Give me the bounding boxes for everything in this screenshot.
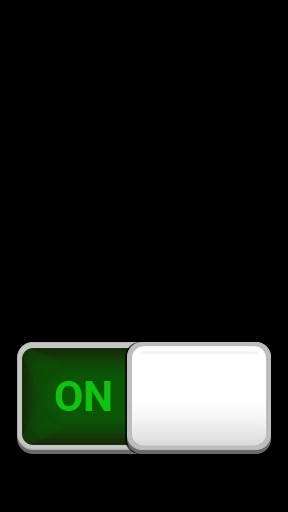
button[interactable]: Power switch, currently on [17, 342, 271, 454]
staticText: ON [54, 371, 113, 421]
